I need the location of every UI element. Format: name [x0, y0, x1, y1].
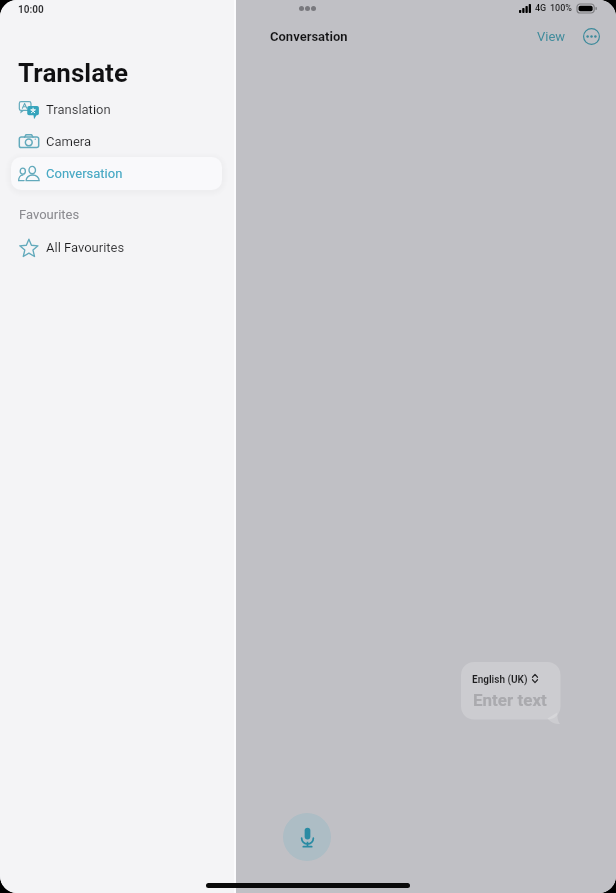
button[interactable]: More options — [581, 26, 602, 47]
button[interactable]: Camera — [11, 125, 222, 158]
staticText: Conversation — [46, 166, 123, 181]
staticText: Camera — [46, 134, 92, 149]
button[interactable]: View — [531, 23, 572, 50]
button[interactable]: Record voice — [283, 813, 331, 861]
staticText: Favourites — [19, 207, 80, 222]
staticText: All Favourites — [46, 240, 125, 255]
button[interactable]: Conversation — [11, 157, 222, 190]
button[interactable]: All Favourites — [11, 231, 222, 264]
staticText: View — [537, 29, 566, 44]
button[interactable]: Translation — [11, 93, 222, 126]
staticText: Conversation — [270, 29, 348, 44]
staticText: 10:00 — [18, 4, 44, 16]
staticText: Enter text — [473, 690, 547, 710]
staticText: Translate — [18, 58, 128, 88]
staticText: Translation — [46, 102, 111, 117]
staticText: 4G — [535, 3, 547, 14]
staticText: English (UK) — [472, 674, 528, 686]
staticText: 100% — [550, 3, 572, 14]
